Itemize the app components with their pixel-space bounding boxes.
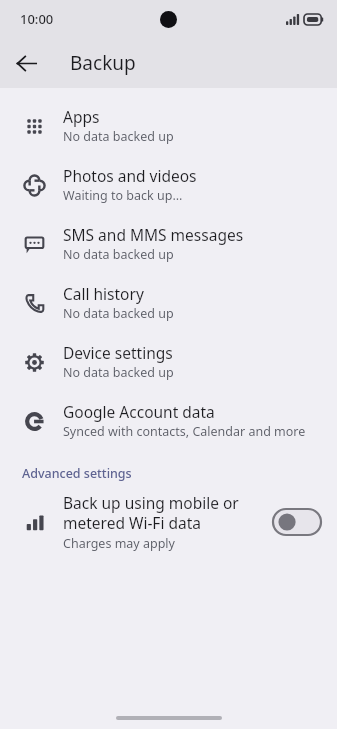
staticText: Device settings [63,342,173,363]
button[interactable]: Apps [0,96,337,155]
staticText: 10:00 [20,10,54,28]
staticText: SMS and MMS messages [63,224,244,245]
button[interactable]: Back [7,44,45,82]
staticText: Advanced settings [22,465,132,482]
button[interactable]: Google Account data [0,391,337,450]
staticText: Waiting to back up… [63,187,183,204]
staticText: No data backed up [63,364,174,381]
staticText: Back up using mobile or metered Wi-Fi da… [63,492,265,534]
button[interactable]: Back up using mobile or metered Wi-Fi da… [0,484,337,562]
staticText: Backup [70,50,136,76]
staticText: No data backed up [63,246,174,263]
button[interactable]: Photos and videos [0,155,337,214]
staticText: Charges may apply [63,535,175,552]
staticText: Synced with contacts, Calendar and more [63,423,306,440]
staticText: Apps [63,106,100,127]
button[interactable]: Call history [0,273,337,332]
staticText: Photos and videos [63,165,197,186]
button[interactable]: SMS and MMS messages [0,214,337,273]
staticText: No data backed up [63,128,174,145]
button[interactable]: Device settings [0,332,337,391]
staticText: Call history [63,283,144,304]
staticText: Google Account data [63,401,215,422]
staticText: No data backed up [63,305,174,322]
button[interactable]: Back up using mobile or metered Wi-Fi da… [271,506,323,538]
